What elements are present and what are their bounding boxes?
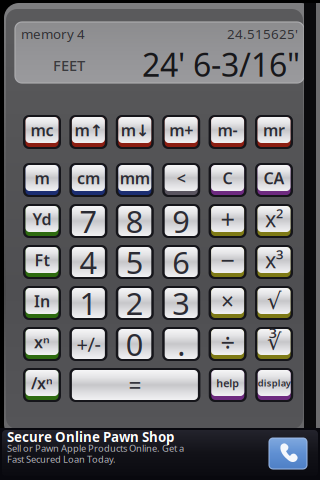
button[interactable]: 4 (69, 245, 107, 279)
staticText: display (258, 377, 291, 389)
staticText: 6 (172, 242, 190, 282)
staticText: mr (263, 119, 285, 141)
button[interactable]: ∛ (255, 327, 293, 361)
button[interactable]: cm (69, 163, 107, 197)
button[interactable]: m- (209, 115, 247, 149)
staticText: x³ (265, 246, 283, 274)
button[interactable]: 7 (69, 204, 107, 238)
button[interactable]: 2 (116, 286, 154, 320)
button[interactable]: = (69, 368, 200, 402)
button[interactable]: mr (255, 115, 293, 149)
button[interactable]: In (23, 286, 61, 320)
staticText: 5 (126, 242, 144, 282)
staticText: m↓ (121, 119, 149, 141)
staticText: Secure Online Pawn Shop (7, 428, 174, 446)
staticText: x² (265, 205, 283, 233)
button[interactable]: Ft (23, 245, 61, 279)
staticText: × (221, 286, 234, 316)
staticText: mc (30, 119, 53, 141)
button[interactable]: √ (255, 286, 293, 320)
button[interactable]: Yd (23, 204, 61, 238)
button[interactable]: 0 (116, 327, 154, 361)
staticText: In (34, 290, 50, 312)
button[interactable]: xⁿ (23, 327, 61, 361)
staticText: 1 (79, 283, 97, 323)
staticText: m- (218, 119, 238, 141)
button[interactable]: 6 (162, 245, 200, 279)
staticText: √ (267, 288, 281, 314)
staticText: . (177, 324, 185, 364)
button[interactable]: + (209, 204, 247, 238)
staticText: Fast Secured Loan Today. (7, 453, 116, 465)
button[interactable]: display (255, 368, 293, 402)
staticText: 24' 6-3/16" (142, 43, 300, 85)
button[interactable]: 9 (162, 204, 200, 238)
staticText: m↑ (74, 119, 102, 141)
staticText: < (177, 167, 186, 189)
staticText: Ft (34, 249, 49, 271)
staticText: 9 (172, 201, 190, 241)
button[interactable]: /xⁿ (23, 368, 61, 402)
staticText: +/- (76, 331, 100, 357)
staticText: m (34, 167, 49, 189)
staticText: + (221, 202, 235, 236)
button[interactable]: help (209, 368, 247, 402)
button[interactable]: x³ (255, 245, 293, 279)
button[interactable]: m (23, 163, 61, 197)
button[interactable]: mc (23, 115, 61, 149)
button[interactable]: m+ (162, 115, 200, 149)
staticText: help (216, 376, 239, 390)
staticText: 2 (126, 283, 144, 323)
staticText: m+ (169, 119, 193, 141)
button[interactable]: mm (116, 163, 154, 197)
staticText: = (128, 370, 141, 400)
button[interactable]: 5 (116, 245, 154, 279)
staticText: Sell or Pawn Apple Products Online. Get … (7, 442, 184, 454)
button[interactable]: CA (255, 163, 293, 197)
staticText: C (223, 167, 233, 189)
button[interactable]: x² (255, 204, 293, 238)
button[interactable]: ÷ (209, 327, 247, 361)
staticText: 24.515625' (227, 25, 298, 43)
staticText: ÷ (221, 325, 235, 359)
staticText: 0 (126, 324, 144, 364)
staticText: 3 (172, 283, 190, 323)
staticText: mm (120, 167, 150, 189)
button[interactable]: m↑ (69, 115, 107, 149)
staticText: − (221, 243, 235, 277)
staticText: CA (263, 167, 284, 189)
button[interactable]: . (162, 327, 200, 361)
button[interactable]: 8 (116, 204, 154, 238)
button[interactable]: 1 (69, 286, 107, 320)
staticText: xⁿ (34, 331, 50, 353)
staticText: memory 4 (21, 25, 85, 43)
staticText: Yd (32, 208, 51, 230)
button[interactable]: < (162, 163, 200, 197)
staticText: cm (77, 167, 100, 189)
staticText: FEET (53, 55, 85, 75)
button[interactable]: C (209, 163, 247, 197)
button[interactable]: 3 (162, 286, 200, 320)
staticText: ∛ (267, 329, 281, 355)
button[interactable]: m↓ (116, 115, 154, 149)
button[interactable]: − (209, 245, 247, 279)
button[interactable]: Secure Online Pawn Shop advertisement (0, 428, 320, 480)
button[interactable]: +/- (69, 327, 107, 361)
staticText: 7 (79, 201, 97, 241)
button[interactable]: × (209, 286, 247, 320)
staticText: 8 (126, 201, 144, 241)
staticText: 4 (79, 242, 97, 282)
staticText: /xⁿ (31, 372, 53, 394)
